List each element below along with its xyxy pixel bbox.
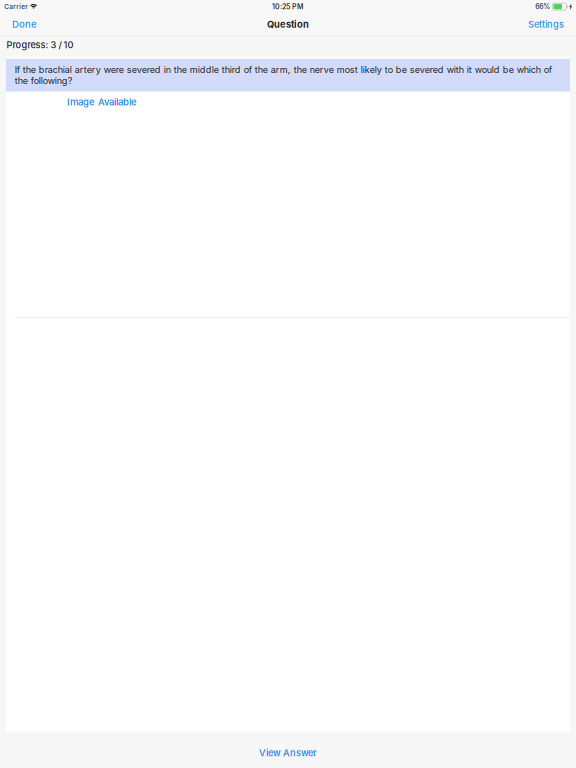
staticText: View Answer [259,747,317,758]
staticText: Image Available [67,96,137,108]
button[interactable]: Settings [521,14,571,35]
staticText: Question [267,19,309,30]
staticText: If the brachial artery were severed in t… [15,64,552,86]
button[interactable]: Done [5,13,44,35]
staticText: 10:25 PM [272,2,304,11]
staticText: Done [12,18,37,30]
button[interactable]: View Answer [0,731,576,768]
staticText: Settings [528,19,564,30]
staticText: Progress: 3 / 10 [6,39,73,50]
button[interactable]: Image Available [67,95,137,109]
staticText: Carrier [4,3,28,10]
button[interactable]: Question [6,57,570,317]
staticText: 66% [535,2,550,11]
